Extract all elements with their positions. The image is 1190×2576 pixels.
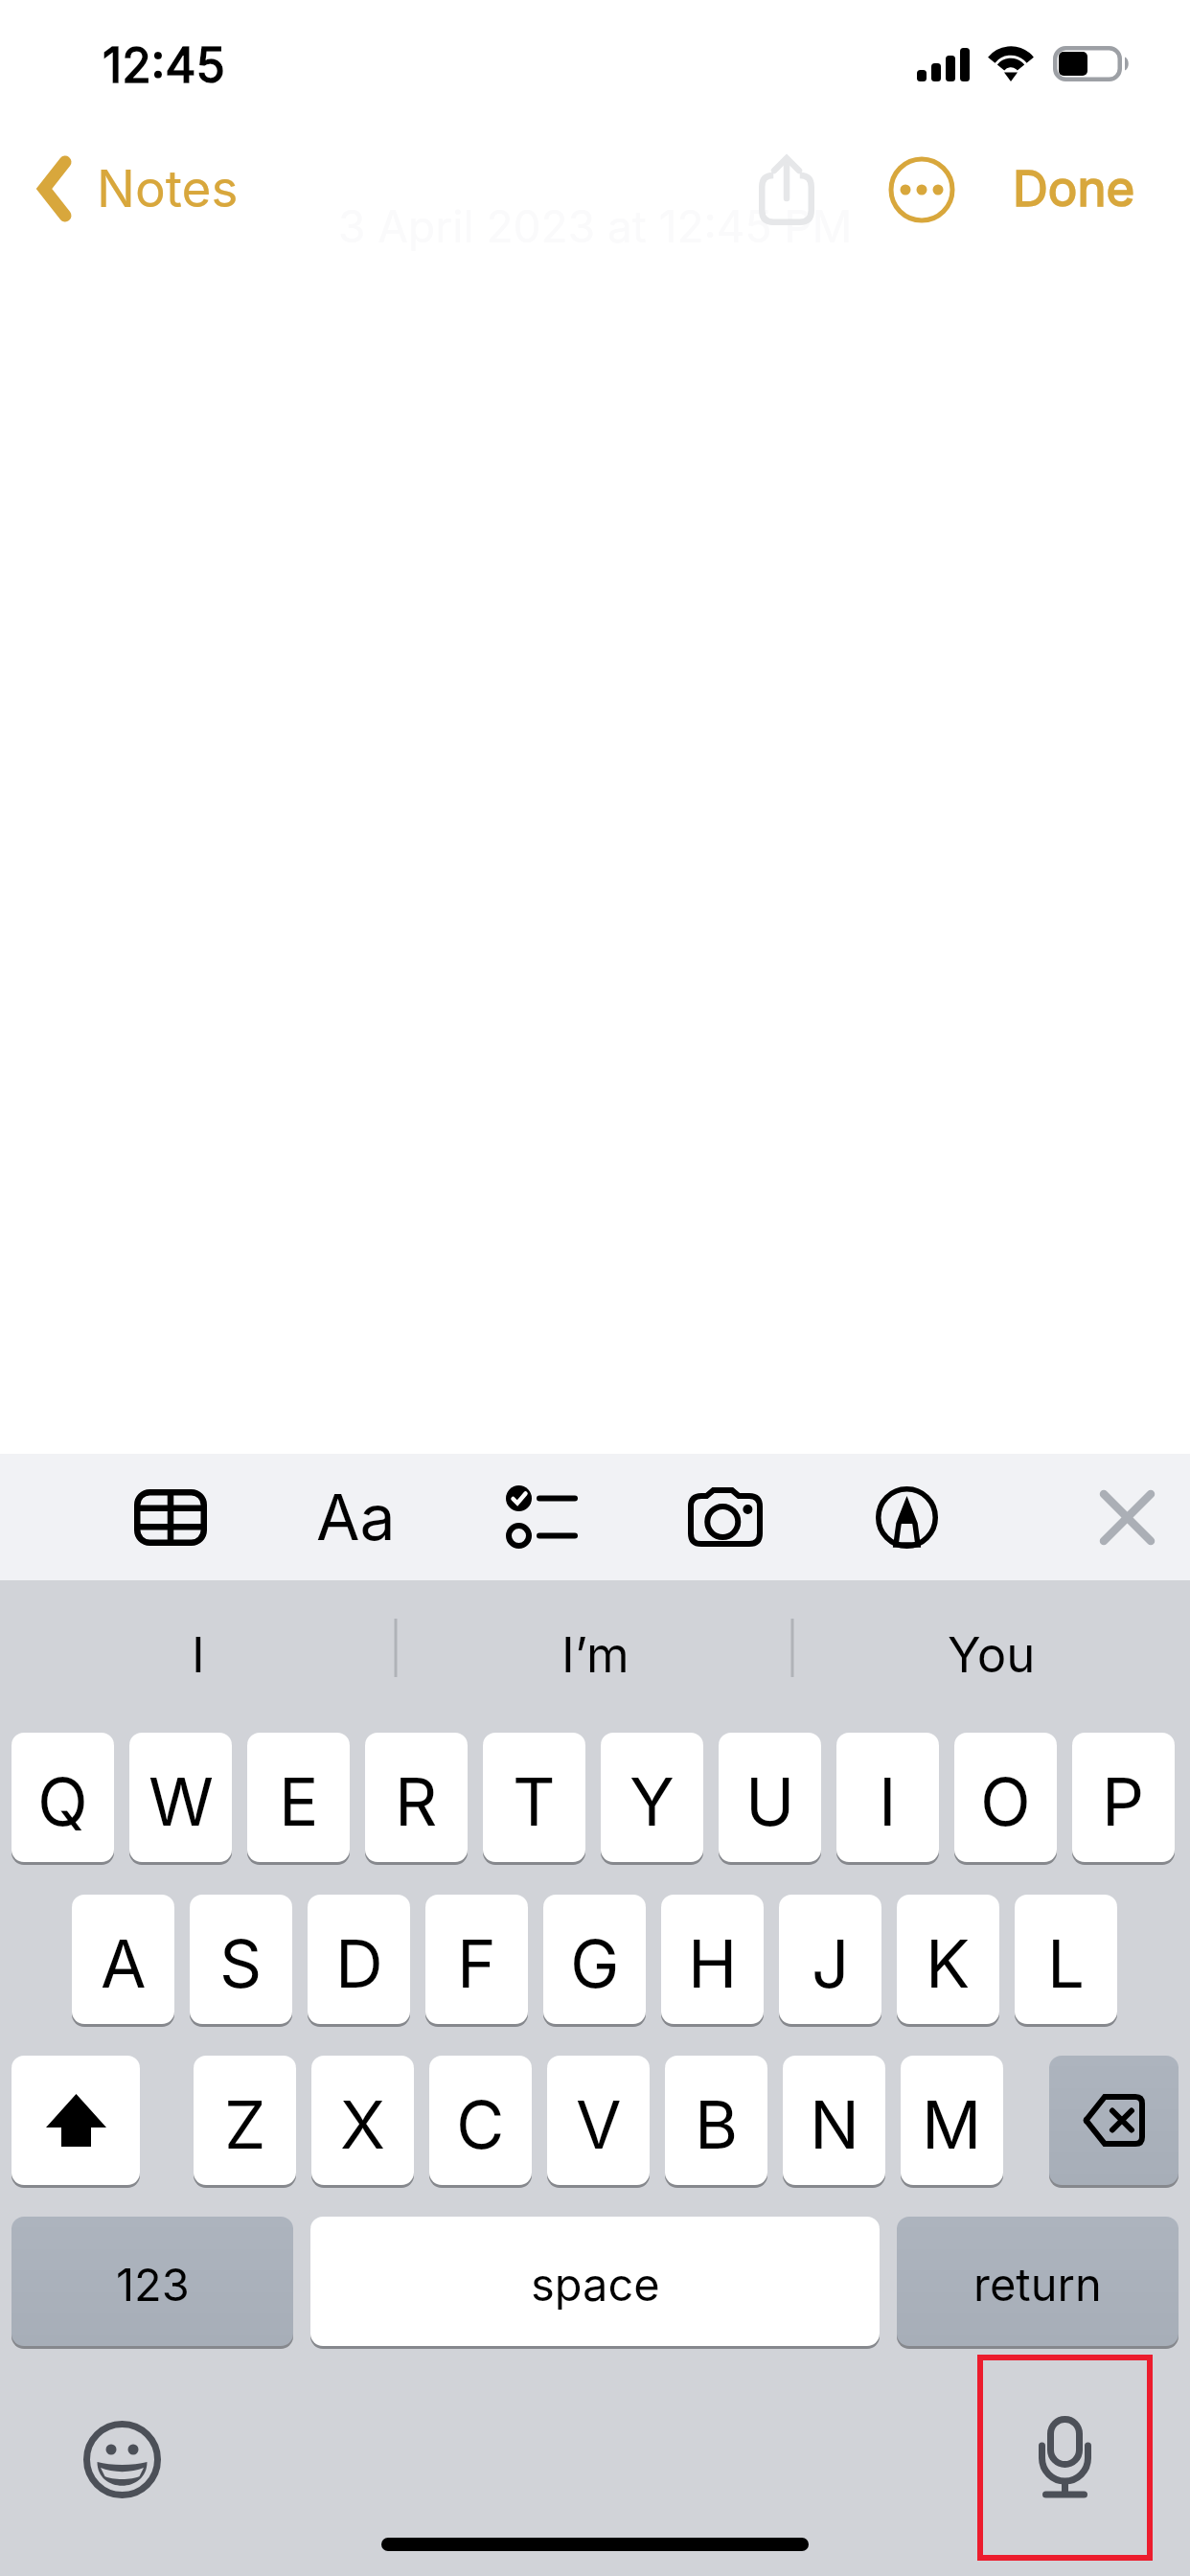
staticText: T	[513, 1761, 556, 1841]
staticText: 123	[116, 2257, 190, 2311]
button[interactable]: You	[793, 1580, 1190, 1729]
staticText: V	[576, 2084, 622, 2164]
button[interactable]: A	[72, 1895, 174, 2024]
button[interactable]: Table	[111, 1460, 230, 1575]
button[interactable]: U	[719, 1733, 821, 1862]
staticText: Z	[224, 2084, 266, 2164]
button[interactable]: X	[311, 2056, 414, 2185]
staticText: 12:45	[103, 36, 225, 94]
staticText: I	[192, 1625, 205, 1685]
staticText: Done	[1013, 159, 1135, 218]
button[interactable]: I	[836, 1733, 939, 1862]
button[interactable]: space	[310, 2217, 880, 2346]
button[interactable]: G	[543, 1895, 646, 2024]
staticText: Aa	[316, 1479, 396, 1555]
staticText: You	[948, 1625, 1036, 1685]
button[interactable]: Markup	[847, 1460, 966, 1575]
staticText: B	[695, 2084, 739, 2164]
button[interactable]: E	[247, 1733, 350, 1862]
staticText: A	[101, 1923, 147, 2003]
staticText: H	[688, 1923, 738, 2003]
button[interactable]: I	[0, 1580, 397, 1729]
button[interactable]: K	[897, 1895, 999, 2024]
staticText: space	[531, 2257, 660, 2311]
button[interactable]: Shift	[11, 2056, 140, 2185]
button[interactable]: Q	[11, 1733, 114, 1862]
staticText: K	[926, 1923, 971, 2003]
button[interactable]: Backspace	[1049, 2056, 1179, 2185]
button[interactable]: F	[425, 1895, 528, 2024]
staticText: I’m	[561, 1625, 629, 1685]
staticText: L	[1047, 1923, 1086, 2003]
staticText: X	[340, 2084, 386, 2164]
staticText: G	[570, 1923, 620, 2003]
button[interactable]: Z	[194, 2056, 296, 2185]
button[interactable]: P	[1072, 1733, 1175, 1862]
button[interactable]: D	[308, 1895, 410, 2024]
button[interactable]: Close keyboard	[1067, 1460, 1186, 1575]
button[interactable]: C	[429, 2056, 532, 2185]
button[interactable]: R	[365, 1733, 468, 1862]
button[interactable]: M	[901, 2056, 1003, 2185]
staticText: O	[980, 1761, 1031, 1841]
button[interactable]: Camera	[666, 1460, 785, 1575]
button[interactable]: B	[665, 2056, 767, 2185]
staticText: Notes	[97, 158, 239, 219]
staticText: N	[810, 2084, 859, 2164]
staticText: P	[1102, 1761, 1145, 1841]
staticText: Q	[37, 1761, 88, 1841]
button[interactable]: T	[483, 1733, 585, 1862]
button[interactable]: Y	[601, 1733, 703, 1862]
staticText: R	[395, 1761, 438, 1841]
button[interactable]: Emoji	[57, 2395, 186, 2523]
staticText: W	[149, 1761, 214, 1841]
staticText: S	[219, 1923, 263, 2003]
button[interactable]: return	[897, 2217, 1179, 2346]
button[interactable]: Done	[988, 141, 1160, 237]
button[interactable]: S	[190, 1895, 292, 2024]
button[interactable]: I’m	[397, 1580, 793, 1729]
button[interactable]: N	[783, 2056, 885, 2185]
staticText: U	[745, 1761, 795, 1841]
button[interactable]: 123	[11, 2217, 293, 2346]
staticText: return	[973, 2257, 1102, 2311]
button[interactable]: V	[547, 2056, 650, 2185]
staticText: F	[457, 1923, 496, 2003]
staticText: C	[456, 2084, 505, 2164]
staticText: J	[812, 1923, 850, 2003]
button[interactable]: Share	[729, 142, 844, 238]
button[interactable]: W	[129, 1733, 232, 1862]
staticText: D	[335, 1923, 383, 2003]
staticText: 3 April 2023 at 12:45 PM	[338, 199, 853, 253]
staticText: I	[879, 1761, 897, 1841]
button[interactable]: Dictation	[980, 2357, 1150, 2558]
button[interactable]: Checklist	[481, 1460, 600, 1575]
staticText: M	[922, 2084, 982, 2164]
button[interactable]: H	[661, 1895, 764, 2024]
button[interactable]: Text format	[296, 1460, 415, 1575]
staticText: Y	[629, 1761, 675, 1841]
staticText: E	[279, 1761, 319, 1841]
button[interactable]: O	[954, 1733, 1057, 1862]
button[interactable]: More	[864, 142, 979, 238]
button[interactable]: J	[779, 1895, 881, 2024]
button[interactable]: Notes	[31, 141, 239, 237]
button[interactable]: L	[1015, 1895, 1117, 2024]
